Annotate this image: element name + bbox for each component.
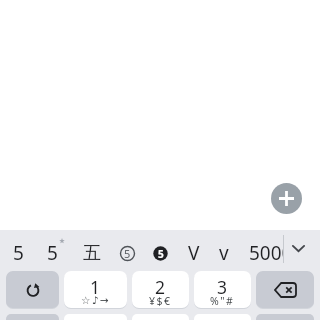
button[interactable]: 5 bbox=[1, 233, 35, 273]
staticText: %"# bbox=[210, 294, 235, 308]
button[interactable] bbox=[64, 314, 127, 320]
staticText: 5 bbox=[124, 246, 131, 261]
button[interactable]: 1 bbox=[64, 271, 127, 308]
button[interactable] bbox=[6, 271, 59, 308]
staticText: ¥$€ bbox=[149, 294, 172, 308]
staticText: ☆♪→ bbox=[81, 294, 111, 306]
button[interactable]: 3 bbox=[194, 271, 251, 308]
button[interactable]: V bbox=[177, 233, 211, 273]
staticText: 3 bbox=[217, 275, 228, 299]
staticText: 5 bbox=[158, 247, 164, 261]
staticText: 5 bbox=[13, 240, 24, 266]
button[interactable] bbox=[271, 183, 302, 214]
button[interactable] bbox=[256, 271, 314, 308]
staticText: 5000 bbox=[249, 240, 283, 266]
button[interactable] bbox=[194, 314, 251, 320]
staticText: 五 bbox=[83, 242, 101, 265]
staticText: V bbox=[188, 240, 200, 266]
button[interactable]: 2 bbox=[132, 271, 189, 308]
staticText: v bbox=[219, 240, 229, 266]
button[interactable] bbox=[6, 314, 59, 320]
button[interactable]: 5 bbox=[35, 233, 69, 273]
staticText: 1 bbox=[90, 275, 101, 299]
button[interactable]: 5000 bbox=[246, 233, 283, 273]
button[interactable] bbox=[281, 230, 315, 267]
button[interactable] bbox=[132, 314, 189, 320]
button[interactable]: 5 bbox=[146, 233, 174, 273]
button[interactable]: 5 bbox=[113, 233, 141, 273]
staticText: 2 bbox=[155, 275, 166, 299]
button[interactable]: 五 bbox=[75, 233, 109, 273]
button[interactable] bbox=[256, 314, 314, 320]
staticText: 5 bbox=[47, 240, 58, 266]
button[interactable]: v bbox=[207, 233, 241, 273]
